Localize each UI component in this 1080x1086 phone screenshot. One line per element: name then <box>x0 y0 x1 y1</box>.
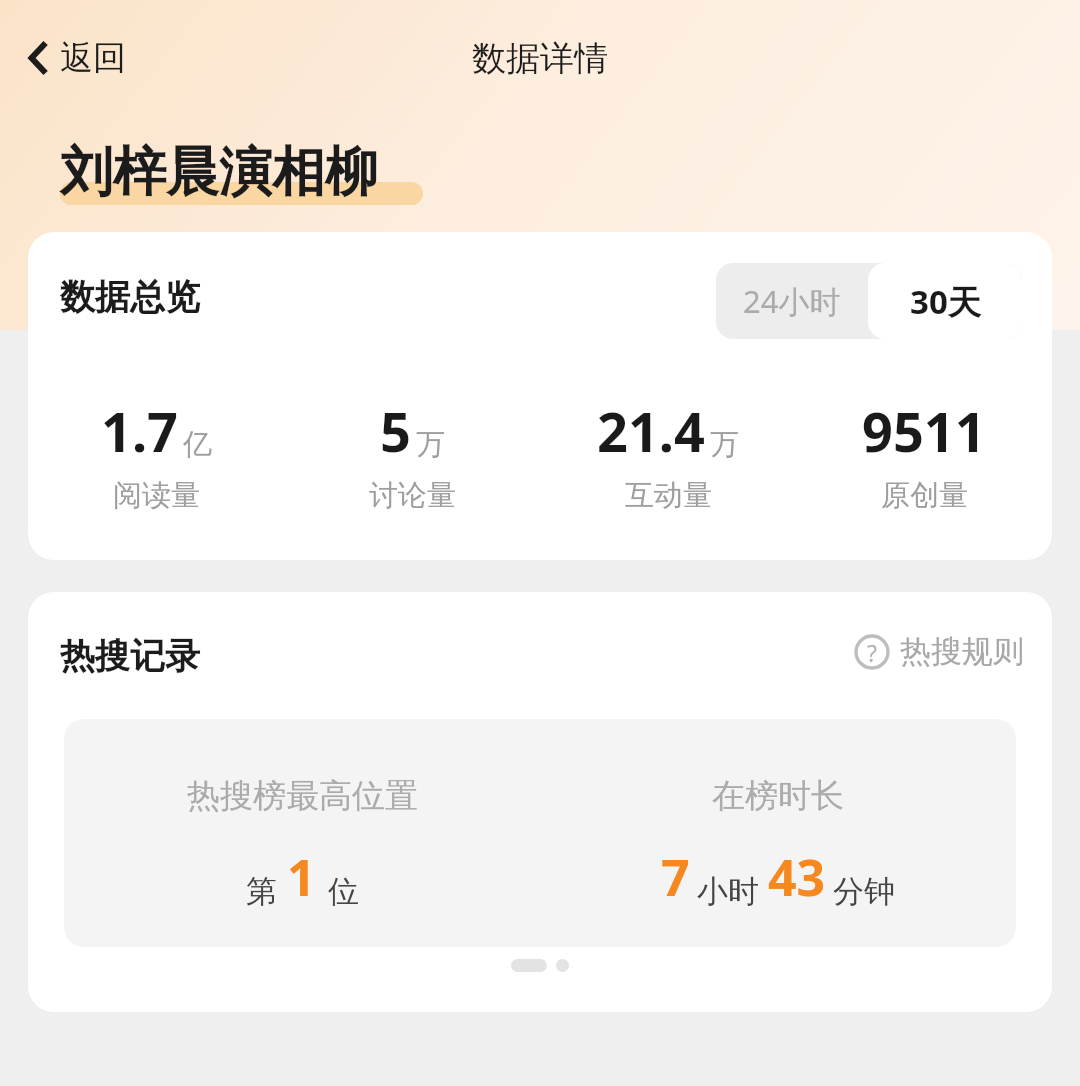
staticText: 数据详情 <box>472 37 608 80</box>
staticText: 9511 <box>862 394 986 468</box>
staticText: 阅读量 <box>113 477 200 514</box>
staticText: 讨论量 <box>369 477 456 514</box>
staticText: 万 <box>416 426 445 463</box>
staticText: 数据总览 <box>60 275 200 319</box>
staticText: 原创量 <box>881 477 968 514</box>
staticText: 返回 <box>60 37 126 79</box>
staticText: 1 <box>287 843 316 911</box>
staticText: ? <box>867 637 877 668</box>
staticText: 互动量 <box>625 477 712 514</box>
button[interactable]: 热搜规则说明 <box>848 628 1030 675</box>
staticText: 小时 <box>697 872 759 911</box>
staticText: 24小时 <box>743 280 841 322</box>
button[interactable]: 24小时 <box>716 263 868 339</box>
staticText: 热搜记录 <box>60 634 200 678</box>
staticText: 1.7 <box>101 394 178 468</box>
button[interactable]: 21.4 <box>540 394 796 514</box>
staticText: 分钟 <box>833 872 895 911</box>
staticText: 30天 <box>910 279 981 324</box>
staticText: 7 <box>661 843 690 911</box>
button[interactable]: 9511 <box>796 394 1052 514</box>
staticText: 21.4 <box>597 394 705 468</box>
button[interactable]: 返回 <box>18 29 136 87</box>
staticText: 第 <box>246 872 277 911</box>
staticText: 43 <box>768 843 826 911</box>
staticText: 万 <box>710 426 739 463</box>
button[interactable]: 5 <box>284 394 540 514</box>
button[interactable]: 在榜时长 <box>540 719 1016 947</box>
staticText: 5 <box>380 394 411 468</box>
staticText: 热搜榜最高位置 <box>187 775 418 817</box>
button[interactable]: 1.7 <box>28 394 284 514</box>
button[interactable]: 30天 <box>868 263 1022 339</box>
staticText: 位 <box>328 872 359 911</box>
staticText: 刘梓晨演相柳 <box>60 139 378 206</box>
staticText: 热搜规则 <box>900 632 1024 671</box>
staticText: 在榜时长 <box>712 775 844 817</box>
button[interactable]: 热搜榜最高位置 <box>64 719 540 947</box>
staticText: 亿 <box>183 426 212 463</box>
